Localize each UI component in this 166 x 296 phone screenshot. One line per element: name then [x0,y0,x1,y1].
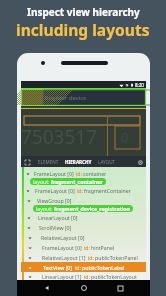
staticText: id: [84,244,90,251]
button[interactable]: Expand [22,157,32,167]
button[interactable]: FrameLayout [0] [21,242,146,252]
staticText: HIERARCHY [65,159,92,165]
button[interactable]: LinearLayout [0] [21,212,146,222]
button[interactable]: HIERARCHY [63,159,94,165]
staticText: LinearLayout [0] [38,214,78,221]
staticText: ScrollView [0] [39,224,72,231]
staticText: ELEMENT [38,159,59,165]
button[interactable]: FrameLayout [0] [21,185,146,195]
button[interactable]: LAYOUT [96,159,118,165]
staticText: RelativeLayout [1] [42,254,86,261]
staticText: Register device [45,94,87,102]
staticText: FrameLayout [0] [34,170,74,177]
staticText: id: [77,187,83,194]
button[interactable]: ScrollView [0] [21,222,146,232]
staticText: fragment_container [51,178,103,185]
button[interactable]: ELEMENT [36,159,61,165]
staticText: 0 [121,128,129,146]
staticText: fragmentContainer [84,187,131,194]
staticText: id: [75,264,81,271]
staticText: LinearLayout [1] [42,273,82,280]
button[interactable]: TextView [0] [21,262,146,272]
staticText: FrameLayout [0] [35,187,75,194]
staticText: layout: [33,178,50,185]
staticText: Inspect view hierarchy [27,5,140,19]
staticText: hintPanel [91,244,115,251]
staticText: including layouts [16,19,150,40]
staticText: publicTokenLayout [91,273,137,280]
staticText: FrameLayout [0] [42,244,82,251]
staticText: container [83,170,107,177]
button[interactable]: Back [41,282,53,294]
staticText: id: [76,170,82,177]
staticText: 8:20 [135,82,144,88]
staticText: LAYOUT [98,159,116,165]
button[interactable]: Recents [114,282,126,294]
staticText: layout: [36,205,53,212]
button[interactable]: LinearLayout [1] [21,272,146,281]
button[interactable]: Home [78,282,90,294]
staticText: 7503517 [21,124,98,150]
staticText: id: [88,254,94,261]
button[interactable]: RelativeLayout [1] [21,252,146,262]
staticText: RelativeLayout [0] [41,234,85,241]
staticText: ViewGroup [0] [37,197,72,204]
staticText: TextView [0] [43,264,73,271]
button[interactable]: RelativeLayout [0] [21,232,146,242]
staticText: id: [84,273,90,280]
staticText: fragment_device_registration [54,205,130,212]
button[interactable]: Settings [136,158,144,166]
staticText: publicTokenPanel [95,254,138,261]
button[interactable]: ViewGroup [0] [21,195,146,212]
staticText: publicTokenLabel [82,264,125,271]
button[interactable]: FrameLayout [0] [21,168,146,185]
